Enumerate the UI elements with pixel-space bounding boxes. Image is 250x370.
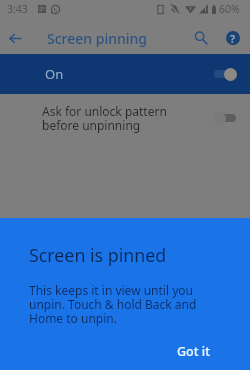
staticText: 3:43 bbox=[7, 2, 28, 16]
staticText: On bbox=[45, 65, 64, 83]
button[interactable]: On bbox=[0, 54, 250, 94]
staticText: Got it bbox=[177, 343, 210, 360]
button[interactable]: Got it bbox=[173, 340, 214, 363]
staticText: This keeps it in view until you unpin. T… bbox=[29, 282, 200, 327]
button[interactable]: Screen pinning on bbox=[213, 67, 237, 81]
staticText: Screen is pinned bbox=[29, 243, 167, 267]
staticText: ? bbox=[230, 31, 236, 45]
button[interactable]: Ask for unlock pattern before unpinning bbox=[213, 111, 237, 125]
button[interactable]: Back bbox=[0, 22, 30, 54]
button[interactable]: Ask for unlock pattern before unpinning bbox=[0, 94, 250, 146]
staticText: Ask for unlock pattern before unpinning bbox=[42, 103, 167, 133]
staticText: Screen pinning bbox=[47, 29, 147, 48]
button[interactable]: Search bbox=[186, 23, 216, 53]
button[interactable]: Help bbox=[218, 23, 248, 53]
staticText: 60% bbox=[219, 2, 240, 16]
